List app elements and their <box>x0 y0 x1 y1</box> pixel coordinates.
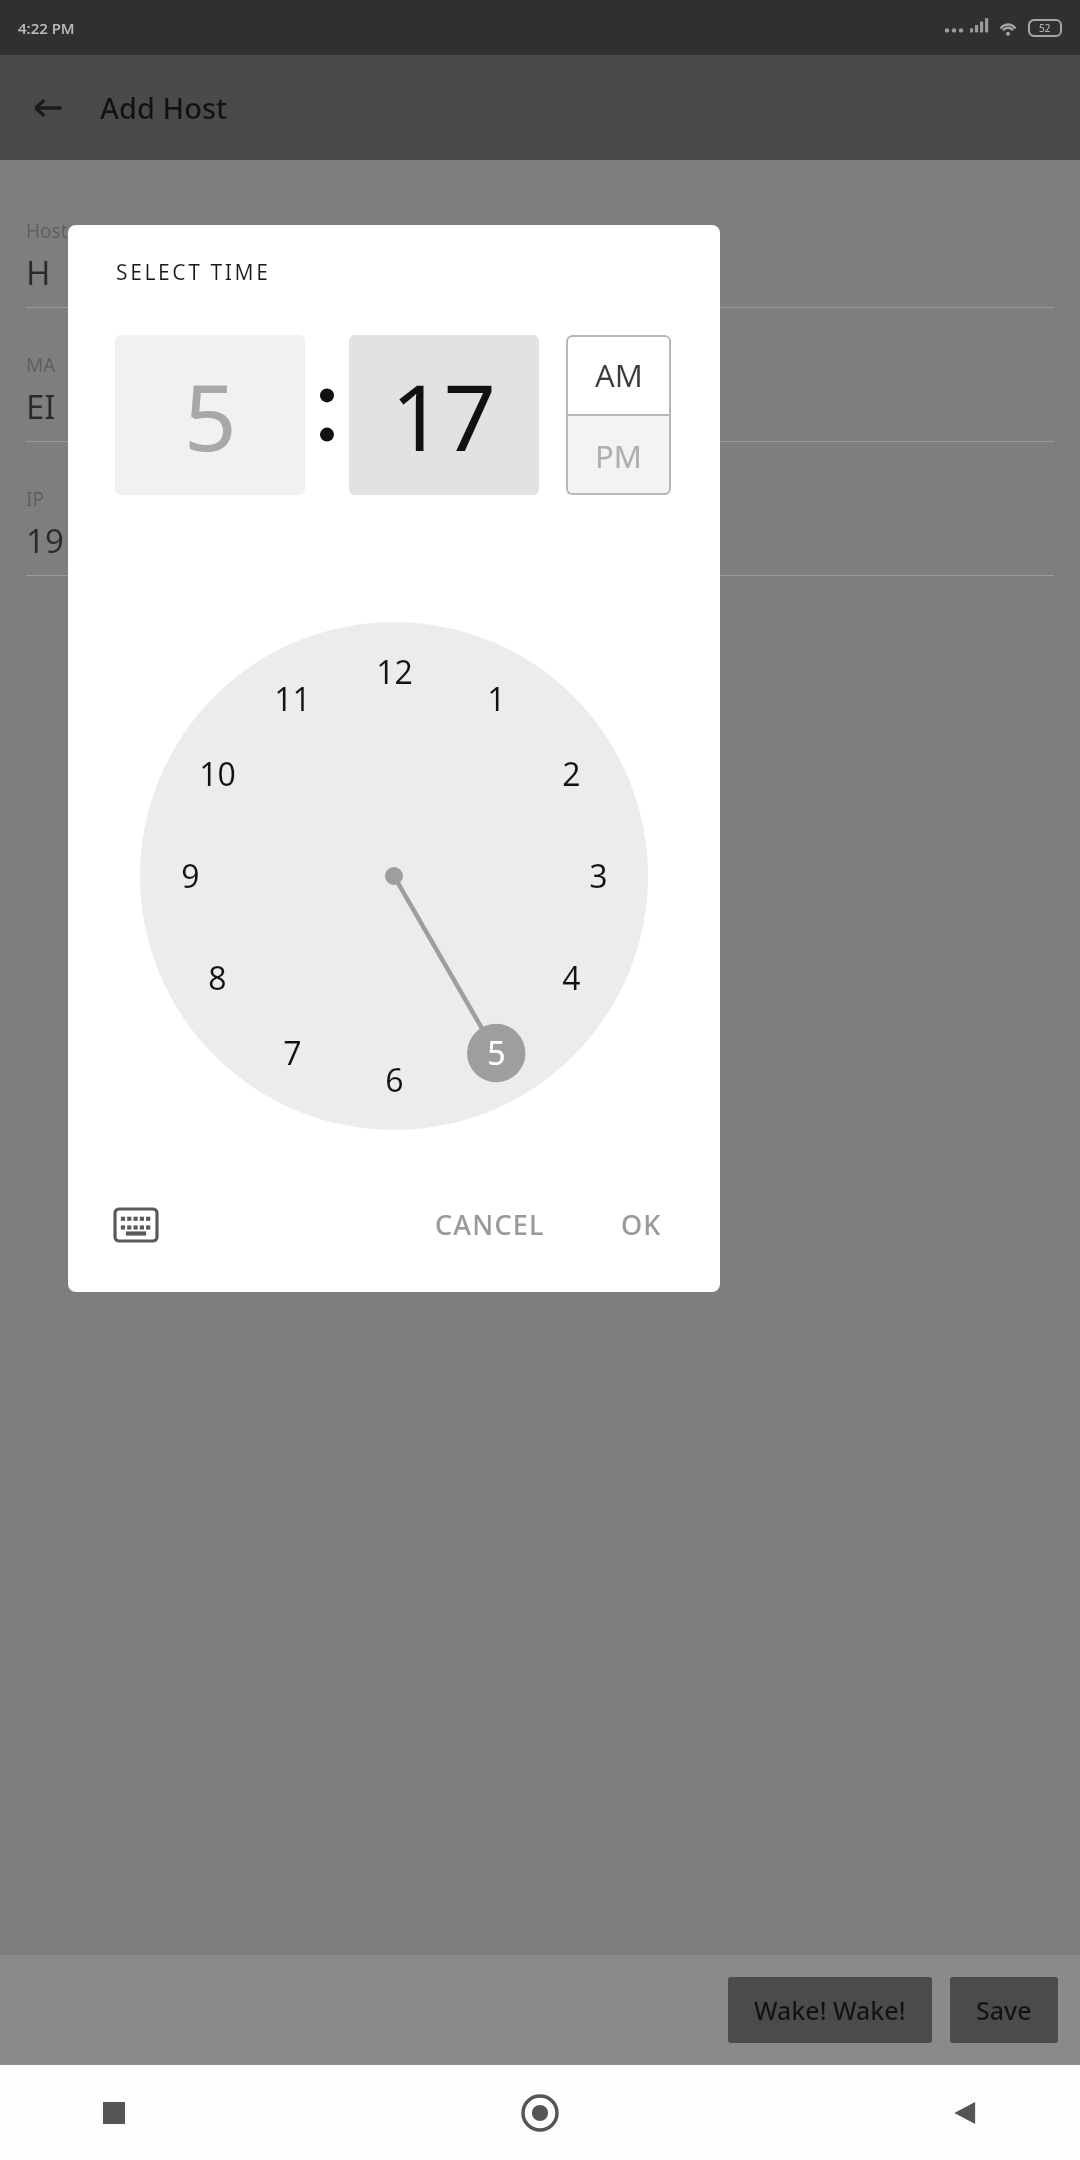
staticText: 8 <box>208 956 227 1000</box>
staticText: Host <box>26 218 68 244</box>
staticText: 17 <box>391 353 497 478</box>
staticText: 3 <box>589 854 608 898</box>
button[interactable]: 5 <box>115 335 305 495</box>
button[interactable]: 4 <box>540 947 602 1009</box>
button[interactable]: 10 <box>186 743 248 805</box>
button[interactable]: CANCEL <box>413 1192 567 1257</box>
staticText: CANCEL <box>435 1206 545 1243</box>
button[interactable]: Home <box>512 2085 568 2141</box>
staticText: Add Host <box>100 88 228 127</box>
staticText: OK <box>621 1206 662 1243</box>
button[interactable]: Wake! Wake! <box>728 1977 932 2043</box>
button[interactable]: Back <box>942 2089 990 2137</box>
button[interactable]: 12 <box>363 641 425 703</box>
staticText: 6 <box>385 1058 404 1102</box>
button[interactable]: 9 <box>159 845 221 907</box>
staticText: 52 <box>1039 21 1051 35</box>
staticText: EI <box>26 384 56 429</box>
staticText: IP <box>26 486 44 512</box>
staticText: Wake! Wake! <box>754 1993 906 2027</box>
button[interactable]: OK <box>599 1192 684 1257</box>
button[interactable]: 2 <box>540 743 602 805</box>
button[interactable]: 11 <box>261 668 323 730</box>
staticText: AM <box>595 354 643 396</box>
staticText: 4 <box>562 956 581 1000</box>
staticText: 5 <box>487 1031 506 1075</box>
button[interactable]: PM <box>566 416 671 495</box>
staticText: 4:22 PM <box>18 18 75 38</box>
button[interactable]: Back <box>22 82 74 134</box>
button[interactable]: Recents <box>90 2089 138 2137</box>
staticText: 7 <box>283 1031 302 1075</box>
button[interactable]: Switch to text input <box>104 1193 168 1257</box>
staticText: 9 <box>181 854 200 898</box>
button[interactable]: 1 <box>465 668 527 730</box>
staticText: 2 <box>562 752 581 796</box>
button[interactable]: Save <box>950 1977 1058 2043</box>
button[interactable]: 7 <box>261 1022 323 1084</box>
staticText: SELECT TIME <box>116 258 271 287</box>
button[interactable]: 5 <box>465 1022 527 1084</box>
button[interactable]: 17 <box>349 335 539 495</box>
staticText: 10 <box>199 752 236 796</box>
staticText: PM <box>595 435 642 477</box>
staticText: Save <box>976 1993 1032 2027</box>
staticText: 5 <box>184 353 237 478</box>
staticText: 12 <box>376 650 413 694</box>
button[interactable]: 8 <box>186 947 248 1009</box>
button[interactable]: AM <box>566 335 671 414</box>
staticText: 11 <box>274 677 311 721</box>
button[interactable]: 3 <box>567 845 629 907</box>
staticText: 1 <box>487 677 506 721</box>
button[interactable]: 6 <box>363 1049 425 1111</box>
staticText: MA <box>26 352 56 378</box>
staticText: 19 <box>26 518 64 563</box>
staticText: H <box>26 250 51 295</box>
